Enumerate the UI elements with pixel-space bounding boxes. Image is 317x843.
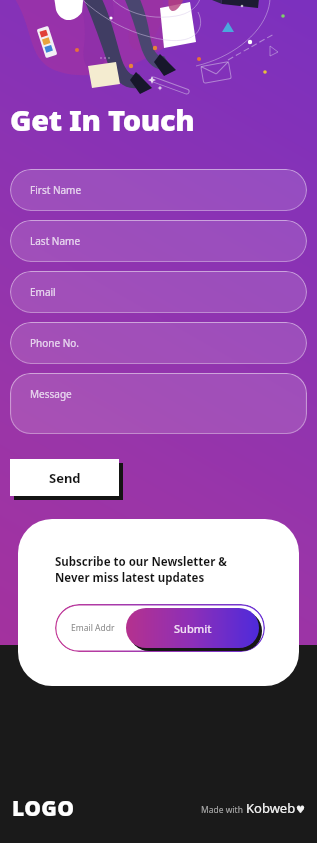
staticText: LOGO: [12, 794, 75, 823]
staticText: Subscribe to our Newsletter &: [55, 554, 227, 570]
staticText: Made with: [201, 804, 246, 816]
staticText: ♥: [296, 804, 305, 816]
staticText: First Name: [30, 183, 82, 197]
staticText: Message: [30, 387, 72, 401]
staticText: Last Name: [30, 234, 81, 248]
button[interactable]: Last Name: [10, 220, 307, 262]
button[interactable]: Message: [10, 373, 307, 434]
button[interactable]: First Name: [10, 169, 307, 211]
button[interactable]: Submit: [126, 608, 259, 648]
staticText: Email Addr: [71, 622, 115, 634]
button[interactable]: Send: [10, 459, 119, 496]
staticText: Phone No.: [30, 336, 80, 350]
staticText: Submit: [174, 621, 212, 636]
staticText: Kobweb: [246, 799, 296, 817]
staticText: Get In Touch: [10, 100, 195, 139]
button[interactable]: LOGO: [12, 794, 75, 823]
button[interactable]: Email: [10, 271, 307, 313]
button[interactable]: Phone No.: [10, 322, 307, 364]
staticText: Email: [30, 285, 56, 299]
staticText: Send: [49, 469, 81, 487]
staticText: Never miss latest updates: [55, 570, 205, 586]
